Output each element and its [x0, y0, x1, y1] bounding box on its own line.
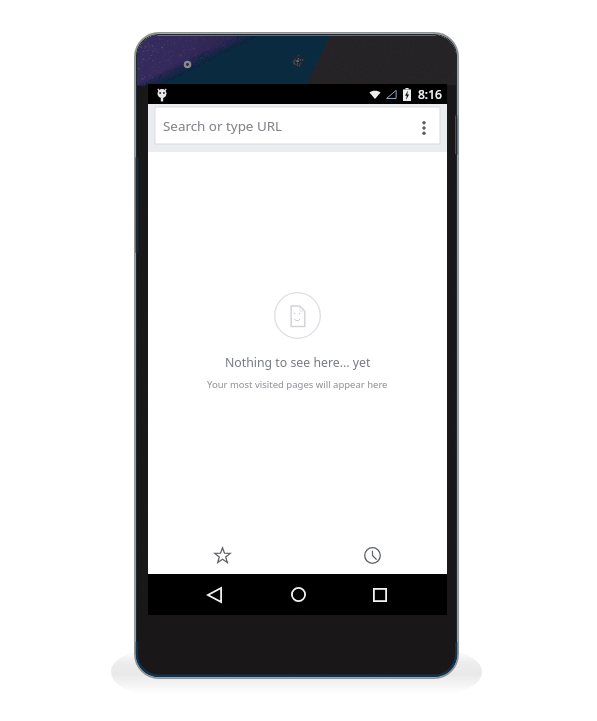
button[interactable]: History — [335, 536, 409, 574]
staticText: 8:16 — [418, 86, 442, 102]
button[interactable]: Back — [187, 574, 241, 615]
button[interactable]: Search or type URL — [155, 107, 440, 144]
button[interactable]: More options — [404, 108, 440, 144]
button[interactable]: Recent apps — [353, 574, 407, 615]
staticText: Search or type URL — [163, 117, 283, 135]
staticText: Nothing to see here... yet — [225, 354, 371, 371]
button[interactable]: Bookmarks — [185, 536, 259, 574]
staticText: Your most visited pages will appear here — [207, 378, 388, 391]
button[interactable]: Home — [271, 574, 325, 615]
